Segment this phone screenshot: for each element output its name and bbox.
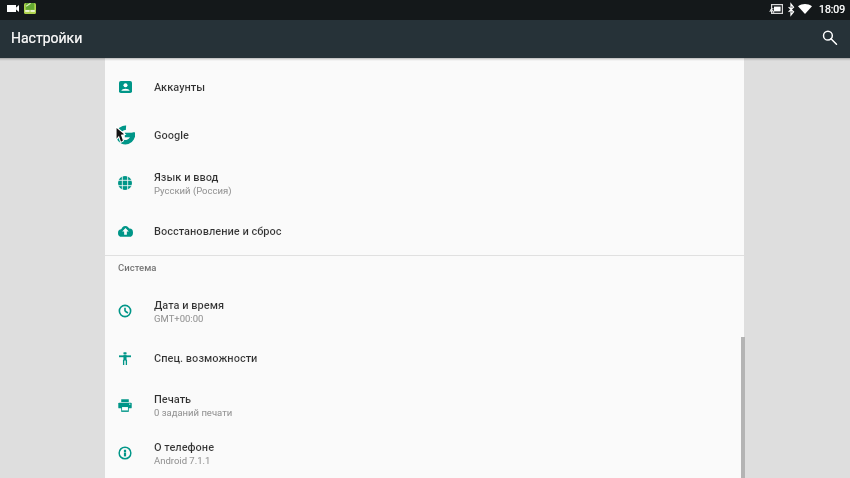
staticText: 0 заданий печати — [154, 407, 233, 418]
staticText: Язык и ввод — [154, 171, 219, 184]
staticText: Печать — [154, 393, 192, 406]
button[interactable]: Google — [105, 111, 744, 159]
staticText: Система — [118, 262, 157, 273]
staticText: Настройки — [11, 30, 83, 46]
staticText: GMT+00:00 — [154, 313, 204, 324]
staticText: Дата и время — [154, 299, 225, 312]
staticText: Android 7.1.1 — [154, 455, 211, 466]
button[interactable]: Аккаунты — [105, 63, 744, 111]
staticText: Google — [154, 129, 189, 142]
staticText: Русский (Россия) — [154, 185, 232, 196]
button[interactable]: Search — [811, 24, 841, 54]
button[interactable]: Язык и ввод — [105, 159, 744, 207]
button[interactable]: О телефоне — [105, 429, 744, 477]
button[interactable]: Печать — [105, 381, 744, 429]
staticText: Спец. возможности — [154, 352, 258, 365]
staticText: 18:09 — [819, 3, 846, 15]
staticText: Восстановление и сброс — [154, 225, 282, 238]
button[interactable]: Восстановление и сброс — [105, 207, 744, 255]
staticText: О телефоне — [154, 441, 215, 454]
button[interactable]: Дата и время — [105, 287, 744, 335]
button[interactable]: Спец. возможности — [105, 334, 744, 382]
staticText: Аккаунты — [154, 81, 206, 94]
